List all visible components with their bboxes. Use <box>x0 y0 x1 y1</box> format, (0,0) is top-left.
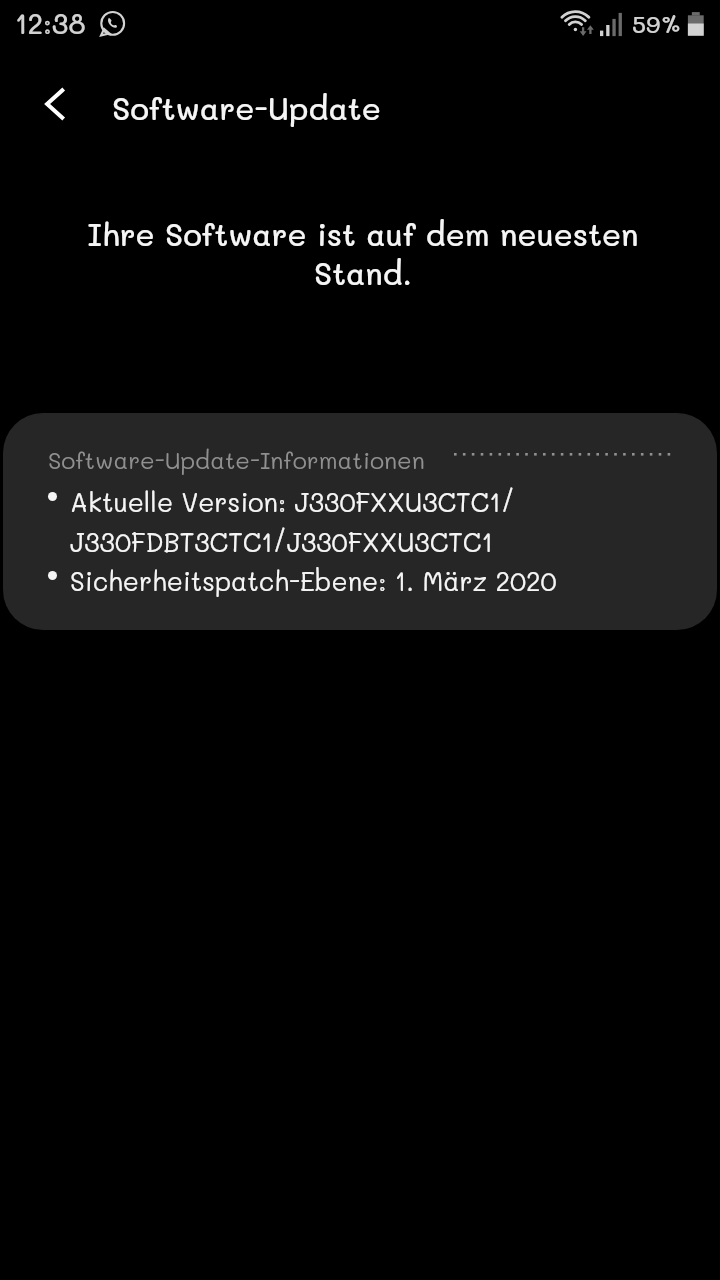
staticText: 12:38 <box>15 5 86 41</box>
staticText: Aktuelle Version: J330FXXU3CTC1/ J330FDB… <box>70 485 515 559</box>
button[interactable]: Back <box>26 76 82 132</box>
staticText: Software-Update <box>112 87 381 128</box>
staticText: Sicherheitspatch-Ebene: 1. März 2020 <box>70 564 557 598</box>
other: Battery 59 percent <box>687 12 707 38</box>
staticText: Software-Update-Informationen <box>48 444 425 475</box>
staticText: Ihre Software ist auf dem neuesten Stand… <box>83 213 643 292</box>
other: WhatsApp notification <box>99 10 127 38</box>
staticText: 59% <box>632 8 682 39</box>
